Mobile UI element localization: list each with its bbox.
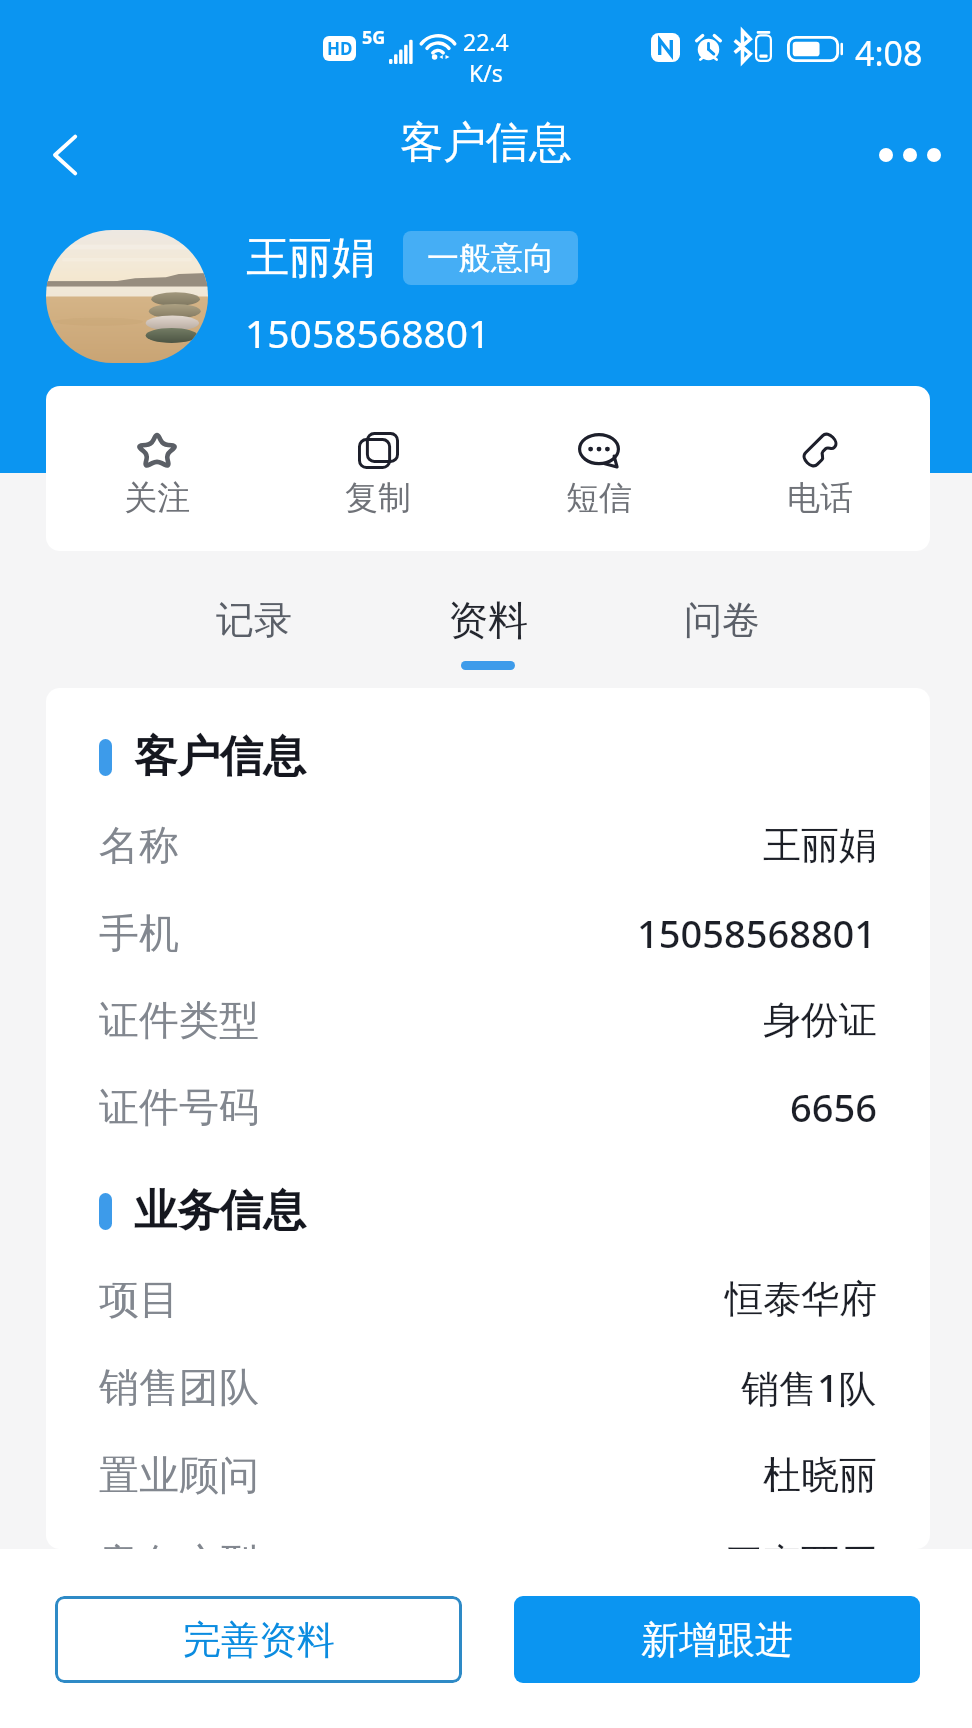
staticText: 客户信息: [134, 730, 306, 784]
button[interactable]: More options: [870, 115, 950, 195]
staticText: 电话: [787, 477, 853, 519]
staticText: 王丽娟: [763, 821, 877, 869]
staticText: 名称: [99, 820, 179, 870]
button[interactable]: Back: [26, 115, 106, 195]
staticText: 22.4: [463, 26, 509, 57]
staticText: 恒泰华府: [725, 1275, 877, 1323]
staticText: 王丽娟: [246, 231, 375, 285]
staticText: HD: [327, 37, 353, 60]
staticText: 新增跟进: [641, 1616, 793, 1664]
staticText: 销售团队: [99, 1362, 259, 1412]
staticText: 置业顾问: [99, 1450, 259, 1500]
button[interactable]: 完善资料: [55, 1596, 462, 1683]
button[interactable]: 短信: [488, 386, 709, 551]
staticText: 6656: [790, 1081, 877, 1133]
button[interactable]: 电话: [709, 386, 930, 551]
staticText: 15058568801: [637, 907, 877, 959]
staticText: 证件类型: [99, 995, 259, 1045]
staticText: K/s: [469, 57, 503, 88]
staticText: 意向户型: [99, 1538, 259, 1549]
staticText: 记录: [216, 596, 292, 644]
staticText: 销售1队: [741, 1361, 877, 1413]
staticText: 杜晓丽: [763, 1451, 877, 1499]
button[interactable]: 新增跟进: [514, 1596, 920, 1683]
staticText: 完善资料: [183, 1616, 335, 1664]
button[interactable]: 问卷: [605, 572, 839, 692]
staticText: 15058568801: [245, 306, 491, 359]
staticText: 一般意向: [427, 238, 555, 278]
staticText: 复制: [345, 477, 411, 519]
staticText: 5G: [362, 25, 386, 50]
button[interactable]: 资料: [371, 572, 605, 692]
staticText: 问卷: [684, 596, 760, 644]
staticText: 项目: [99, 1274, 179, 1324]
button[interactable]: 记录: [137, 572, 371, 692]
button[interactable]: 复制: [267, 386, 488, 551]
button[interactable]: 一般意向: [403, 231, 578, 285]
staticText: 三室两厅: [725, 1539, 877, 1549]
staticText: 客户信息: [400, 116, 572, 170]
staticText: 关注: [124, 477, 190, 519]
staticText: 短信: [566, 477, 632, 519]
staticText: 身份证: [763, 996, 877, 1044]
staticText: 手机: [99, 908, 179, 958]
staticText: 证件号码: [99, 1082, 259, 1132]
staticText: 4:08: [855, 30, 923, 76]
button[interactable]: 关注: [46, 386, 267, 551]
staticText: 资料: [448, 595, 528, 645]
staticText: 业务信息: [134, 1184, 306, 1238]
